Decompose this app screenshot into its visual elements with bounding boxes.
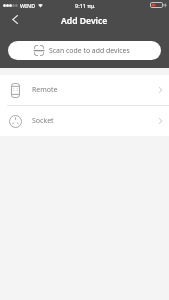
staticText: Scan code to add devices — [49, 46, 130, 55]
staticText: Add Device — [61, 15, 108, 27]
button[interactable]: Scan code to add devices — [8, 41, 161, 60]
staticText: Remote — [32, 85, 58, 95]
button[interactable]: Back — [0, 10, 30, 32]
button[interactable]: Remote — [0, 75, 169, 105]
staticText: Socket — [32, 116, 54, 126]
button[interactable]: Socket — [0, 106, 169, 136]
staticText: 9:11 πμ — [75, 2, 95, 9]
staticText: WIND — [20, 2, 36, 9]
